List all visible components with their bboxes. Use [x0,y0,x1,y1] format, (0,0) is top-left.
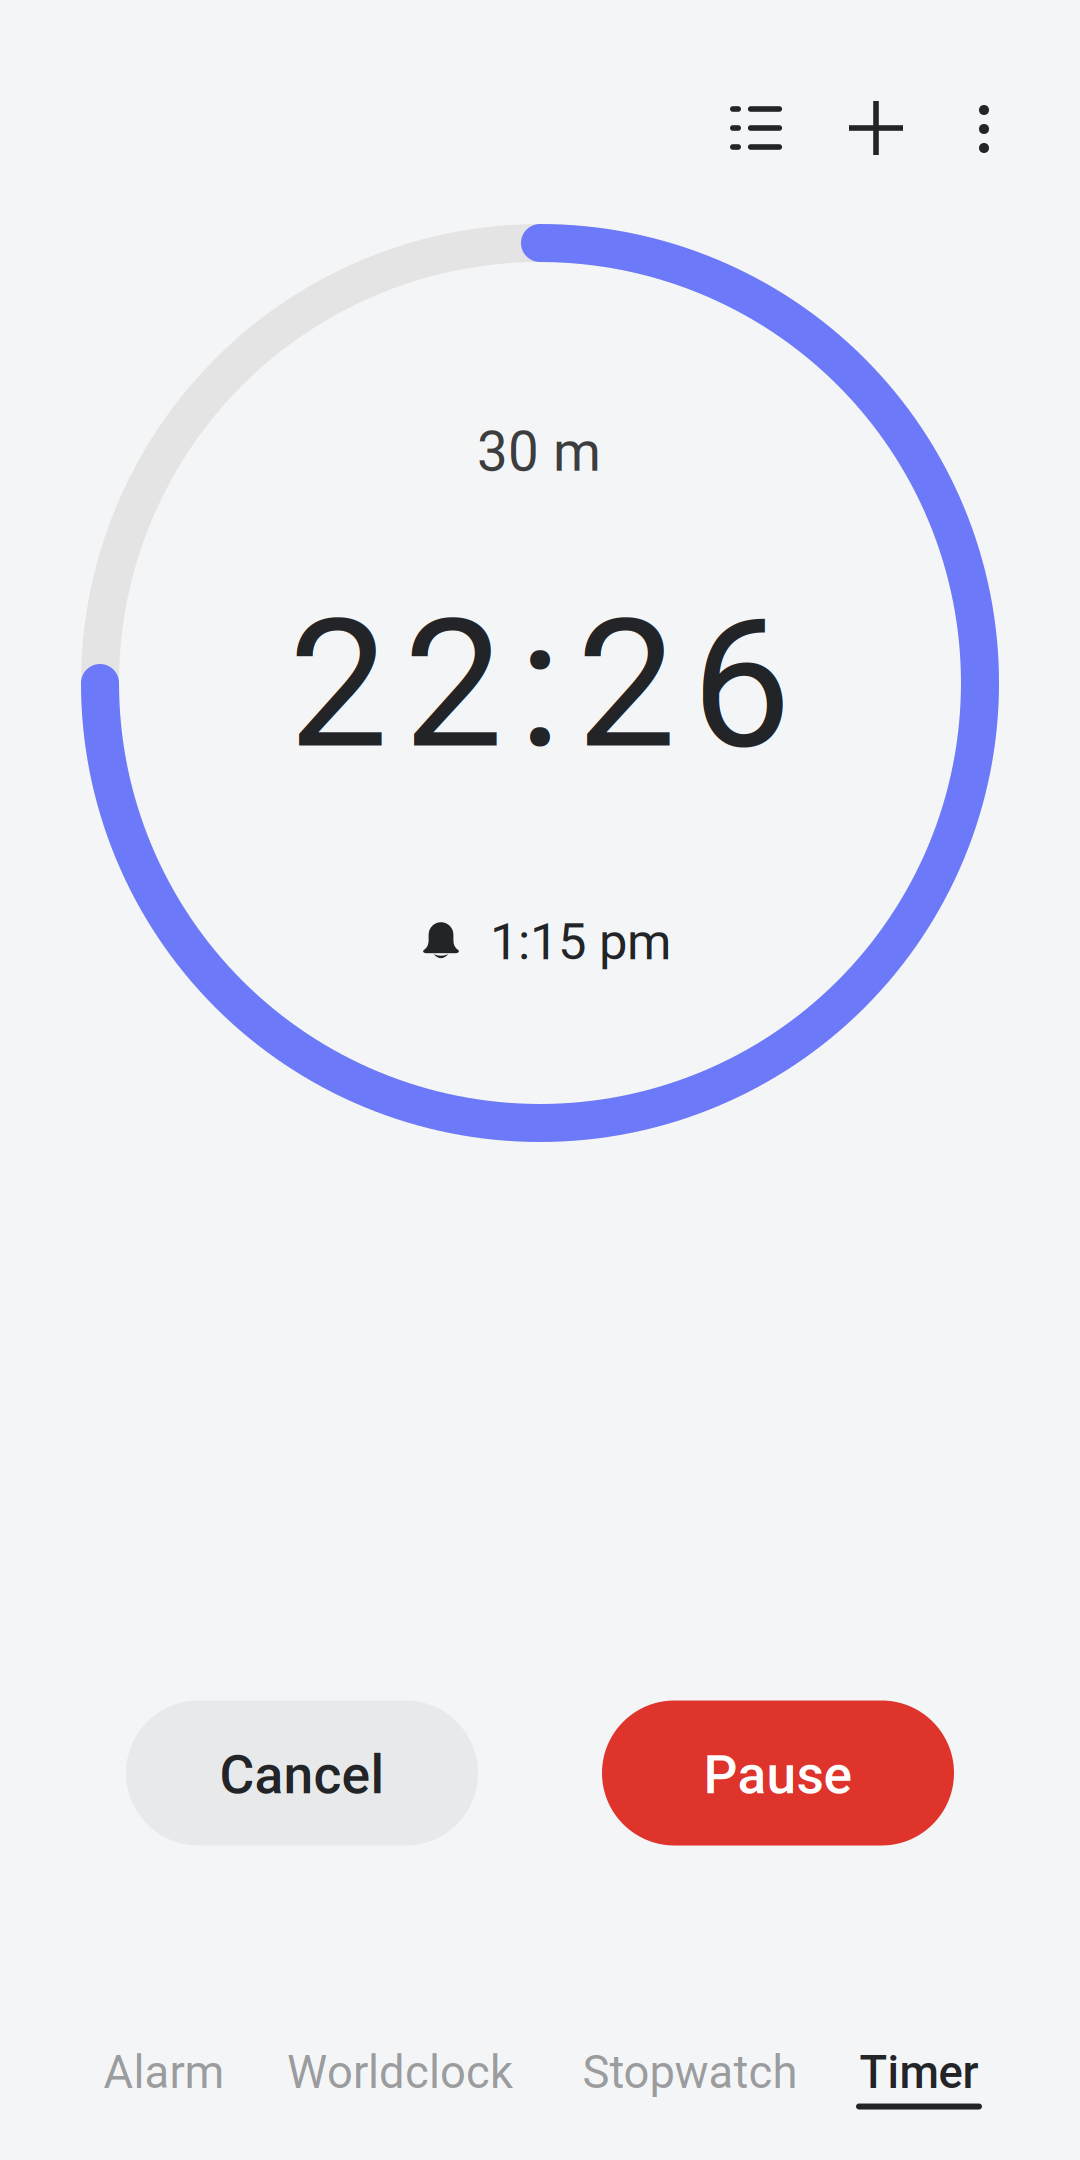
button[interactable]: Timer [839,2030,999,2141]
button[interactable]: Stopwatch [566,2030,814,2141]
button[interactable]: Pause [602,1700,954,1845]
button[interactable]: Cancel [126,1700,478,1845]
button[interactable]: More options [928,73,1040,185]
staticText: 30 m [477,420,601,484]
staticText: Cancel [219,1744,384,1806]
button[interactable]: Add timer [820,72,932,184]
staticText: Stopwatch [582,2046,797,2099]
staticText: Alarm [103,2046,224,2099]
button[interactable]: Worldclock [270,2030,530,2141]
staticText: Pause [703,1744,852,1806]
staticText: 22:26 [288,581,791,789]
staticText: Timer [859,2046,978,2099]
staticText: Worldclock [287,2046,513,2099]
button[interactable]: Saved timers [700,72,812,184]
staticText: 1:15 pm [490,912,671,972]
button[interactable]: Alarm [88,2030,240,2141]
